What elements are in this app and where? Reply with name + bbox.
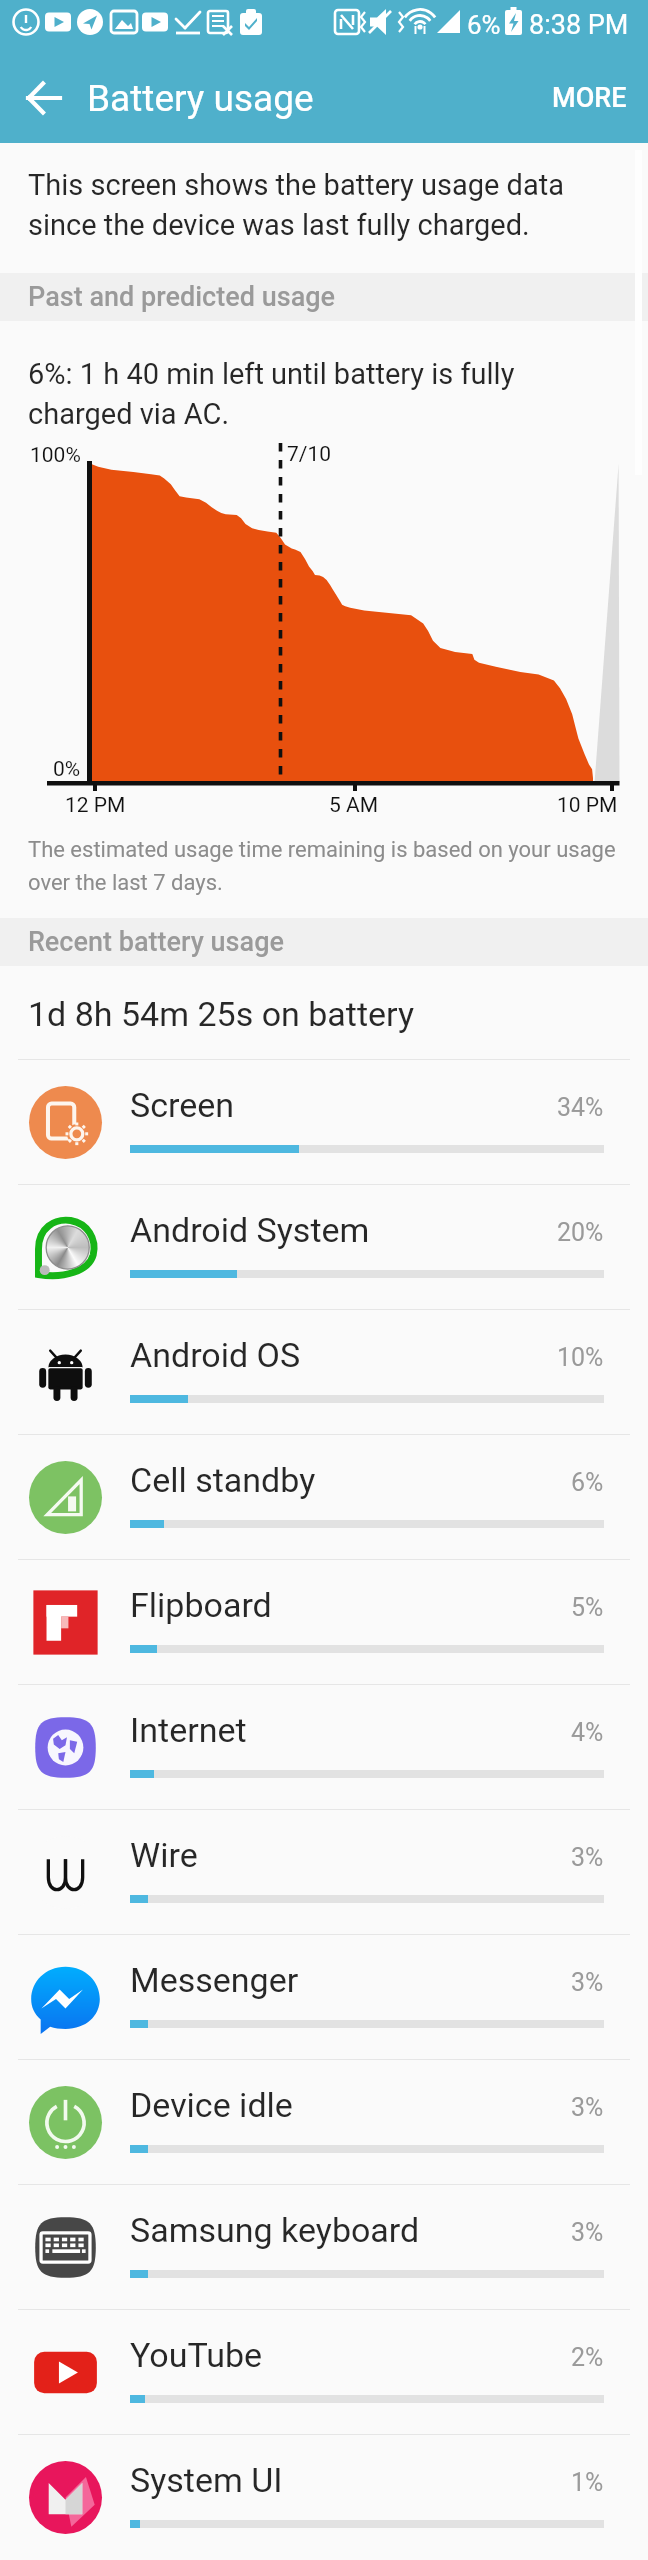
staticText: 8:38 PM (529, 9, 629, 41)
staticText: 4% (571, 1718, 604, 1747)
staticText: 3% (571, 2218, 604, 2247)
staticText: 6%: 1 h 40 min left until battery is ful… (28, 357, 558, 432)
staticText: Flipboard (130, 1585, 571, 1625)
button[interactable]: Back (13, 67, 75, 129)
staticText: The estimated usage time remaining is ba… (28, 837, 634, 895)
button[interactable]: Internet (0, 1685, 648, 1809)
staticText: 1% (571, 2468, 604, 2497)
staticText: Wire (130, 1835, 571, 1875)
staticText: Recent battery usage (28, 926, 284, 958)
button[interactable]: Android OS (0, 1310, 648, 1434)
staticText: This screen shows the battery usage data… (28, 168, 588, 243)
button[interactable]: YouTube (0, 2310, 648, 2434)
staticText: Screen (130, 1085, 557, 1125)
staticText: Internet (130, 1710, 571, 1750)
staticText: Past and predicted usage (28, 281, 336, 313)
staticText: 2% (571, 2343, 604, 2372)
button[interactable]: Cell standby (0, 1435, 648, 1559)
staticText: 6% (571, 1468, 604, 1497)
staticText: 1d 8h 54m 25s on battery (28, 994, 415, 1034)
staticText: Android OS (130, 1335, 557, 1375)
staticText: Battery usage (87, 77, 314, 120)
button[interactable]: Android System (0, 1185, 648, 1309)
staticText: 7/10 (287, 442, 332, 467)
button[interactable]: Screen (0, 1060, 648, 1184)
staticText: 20% (557, 1218, 604, 1247)
staticText: 12 PM (65, 793, 126, 818)
staticText: Samsung keyboard (130, 2210, 571, 2250)
staticText: 34% (557, 1093, 604, 1122)
staticText: 0% (53, 757, 81, 782)
staticText: 100% (30, 443, 81, 468)
button[interactable]: Messenger (0, 1935, 648, 2059)
staticText: 6% (467, 10, 501, 40)
staticText: 3% (571, 1968, 604, 1997)
staticText: System UI (130, 2460, 571, 2500)
staticText: 5% (571, 1593, 604, 1622)
button[interactable]: Samsung keyboard (0, 2185, 648, 2309)
button[interactable]: Device idle (0, 2060, 648, 2184)
staticText: Android System (130, 1210, 557, 1250)
staticText: MORE (552, 82, 627, 114)
button[interactable]: System UI (0, 2435, 648, 2559)
staticText: 5 AM (329, 793, 379, 818)
staticText: YouTube (130, 2335, 571, 2375)
staticText: 3% (571, 2093, 604, 2122)
staticText: 10% (557, 1343, 604, 1372)
staticText: Device idle (130, 2085, 571, 2125)
button[interactable]: MORE (531, 64, 648, 132)
staticText: 3% (571, 1843, 604, 1872)
button[interactable]: Wire (0, 1810, 648, 1934)
button[interactable]: Flipboard (0, 1560, 648, 1684)
staticText: Cell standby (130, 1460, 571, 1500)
staticText: Messenger (130, 1960, 571, 2000)
staticText: 10 PM (557, 793, 618, 818)
